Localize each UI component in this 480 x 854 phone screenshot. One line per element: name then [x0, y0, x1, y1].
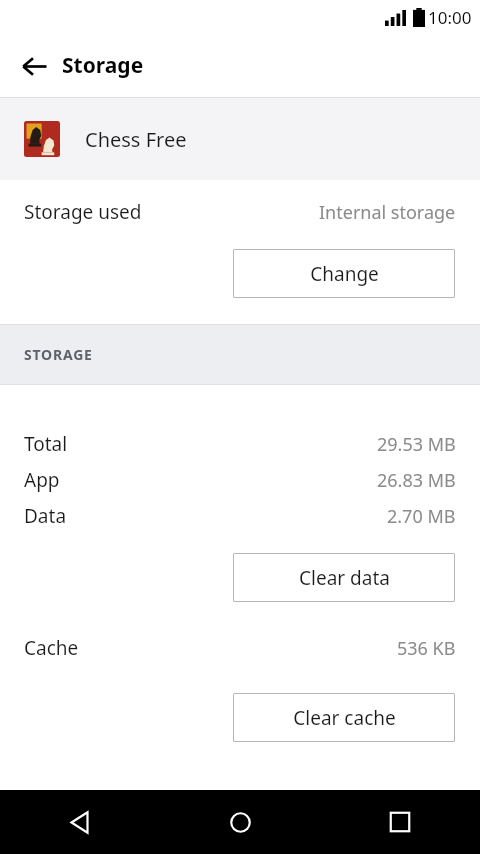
button[interactable]: Cache	[0, 630, 480, 666]
staticText: Chess Free	[85, 126, 187, 153]
staticText: Internal storage	[319, 200, 456, 225]
staticText: 10:00	[428, 6, 472, 29]
button[interactable]: Total	[0, 426, 480, 462]
staticText: Clear cache	[293, 705, 396, 731]
staticText: Storage	[62, 51, 144, 80]
staticText: 2.70 MB	[387, 504, 456, 529]
staticText: 26.83 MB	[377, 468, 456, 493]
button[interactable]: Data	[0, 498, 480, 534]
button[interactable]: Recent apps	[320, 790, 480, 854]
staticText: Storage used	[24, 199, 142, 225]
staticText: Clear data	[299, 565, 390, 591]
staticText: 536 KB	[397, 636, 456, 661]
button[interactable]: Navigate up	[10, 42, 58, 90]
button[interactable]: Change	[233, 249, 455, 298]
button[interactable]: Home	[160, 790, 320, 854]
button[interactable]: Clear cache	[233, 693, 455, 742]
staticText: Cache	[24, 635, 79, 661]
button[interactable]: App	[0, 462, 480, 498]
button[interactable]: Storage used	[0, 194, 480, 230]
button[interactable]: Back	[0, 790, 160, 854]
button[interactable]: Chess Free	[0, 98, 480, 180]
button[interactable]: Clear data	[233, 553, 455, 602]
staticText: 29.53 MB	[377, 432, 456, 457]
staticText: STORAGE	[24, 345, 93, 364]
staticText: Total	[24, 431, 68, 457]
staticText: Data	[24, 503, 67, 529]
staticText: App	[24, 467, 60, 493]
staticText: Change	[310, 261, 379, 287]
